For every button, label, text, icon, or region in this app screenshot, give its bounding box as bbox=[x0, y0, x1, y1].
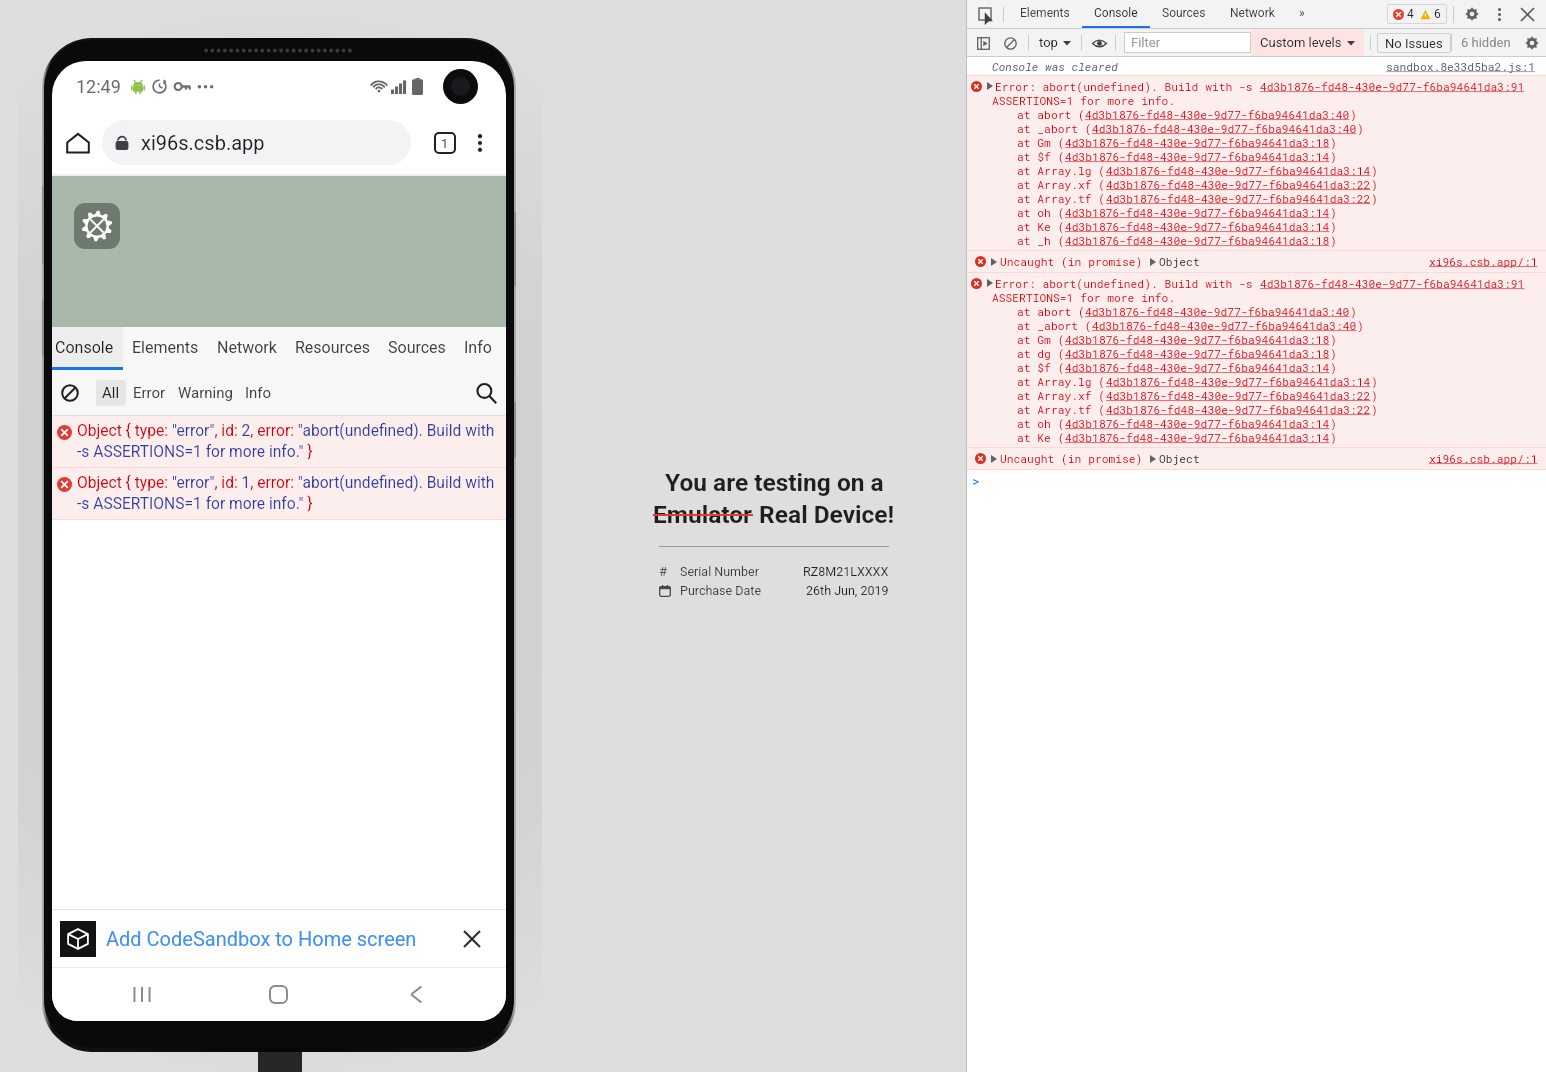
staticText: Uncaught (in promise) bbox=[1000, 451, 1143, 466]
button[interactable]: Error bbox=[127, 380, 172, 406]
button[interactable]: Filter bbox=[1124, 32, 1251, 53]
staticText: Console was cleared bbox=[992, 59, 1118, 74]
staticText: 1 bbox=[441, 136, 449, 151]
button[interactable]: Network bbox=[1218, 0, 1287, 28]
staticText: » bbox=[1299, 6, 1305, 20]
button[interactable]: Close DevTools bbox=[1517, 4, 1537, 24]
staticText: 4d3b1876-fd48-430e-9d77-f6ba94641da3:18 bbox=[1065, 233, 1330, 247]
staticText: ) bbox=[1330, 332, 1337, 346]
button[interactable]: Info bbox=[455, 327, 500, 370]
staticText: 4d3b1876-fd48-430e-9d77-f6ba94641da3:14 bbox=[1065, 430, 1330, 444]
staticText: ) bbox=[1330, 346, 1337, 360]
staticText: Info bbox=[245, 384, 272, 402]
button[interactable]: Elements bbox=[1008, 0, 1082, 28]
button[interactable]: Network bbox=[208, 327, 286, 370]
staticText: 4 bbox=[1407, 7, 1414, 21]
staticText: at Array.xf ( bbox=[1017, 388, 1106, 402]
staticText: 4d3b1876-fd48-430e-9d77-f6ba94641da3:14 bbox=[1106, 374, 1371, 388]
button[interactable]: » bbox=[1287, 0, 1317, 28]
staticText: at Array.tf ( bbox=[1017, 191, 1106, 205]
staticText: at Array.tf ( bbox=[1017, 402, 1106, 416]
staticText: at _abort ( bbox=[1017, 121, 1092, 135]
button[interactable]: Clear console bbox=[1000, 33, 1020, 53]
button[interactable]: Custom levels bbox=[1251, 29, 1364, 56]
staticText: 4d3b1876-fd48-430e-9d77-f6ba94641da3:40 bbox=[1092, 121, 1357, 135]
staticText: ) bbox=[1330, 135, 1337, 149]
staticText: at Array.xf ( bbox=[1017, 177, 1106, 191]
button[interactable]: More options bbox=[467, 130, 493, 156]
staticText: at oh ( bbox=[1017, 205, 1065, 219]
staticText: 6 hidden bbox=[1461, 35, 1511, 50]
button[interactable]: Elements bbox=[123, 327, 208, 370]
button[interactable]: Show sidebar bbox=[973, 33, 993, 53]
staticText: 4d3b1876-fd48-430e-9d77-f6ba94641da3:18 bbox=[1065, 332, 1330, 346]
staticText: 4d3b1876-fd48-430e-9d77-f6ba94641da3:40 bbox=[1085, 107, 1350, 121]
staticText: 4d3b1876-fd48-430e-9d77-f6ba94641da3:22 bbox=[1106, 402, 1371, 416]
staticText: sandbox.8e33d5ba2.js:1 bbox=[1386, 59, 1536, 74]
button[interactable]: Tabs bbox=[429, 127, 461, 159]
button[interactable]: Live expression bbox=[1089, 33, 1109, 53]
button[interactable]: Warning bbox=[172, 380, 239, 406]
button[interactable]: Console bbox=[52, 327, 123, 370]
staticText: Warning bbox=[178, 384, 233, 402]
button[interactable]: top bbox=[1036, 35, 1074, 50]
button[interactable]: Add CodeSandbox to Home screen bbox=[52, 910, 506, 967]
button[interactable]: No Issues bbox=[1377, 33, 1451, 53]
button[interactable]: Settings bbox=[1462, 4, 1482, 24]
button[interactable]: 4 bbox=[1387, 4, 1447, 24]
staticText: 4d3b1876-fd48-430e-9d77-f6ba94641da3:14 bbox=[1065, 416, 1330, 430]
button[interactable]: Search bbox=[471, 378, 501, 408]
button[interactable]: Sources bbox=[379, 327, 455, 370]
staticText: 4d3b1876-fd48-430e-9d77-f6ba94641da3:14 bbox=[1065, 360, 1330, 374]
button[interactable]: Home bbox=[210, 968, 347, 1021]
button[interactable]: Sources bbox=[1150, 0, 1218, 28]
staticText: ASSERTIONS=1 for more info. bbox=[992, 290, 1176, 304]
staticText: Console bbox=[55, 338, 114, 357]
staticText: ) bbox=[1357, 121, 1364, 135]
staticText: 4d3b1876-fd48-430e-9d77-f6ba94641da3:18 bbox=[1065, 135, 1330, 149]
button[interactable]: All bbox=[96, 380, 126, 406]
button[interactable]: Customize bbox=[1491, 6, 1507, 22]
staticText: Sources bbox=[388, 338, 446, 357]
staticText: ) bbox=[1371, 388, 1378, 402]
button[interactable]: Clear console bbox=[55, 378, 85, 408]
staticText: Network bbox=[1230, 6, 1275, 20]
staticText: at $f ( bbox=[1017, 149, 1065, 163]
button[interactable]: Inspect element bbox=[973, 2, 997, 26]
staticText: ) bbox=[1371, 191, 1378, 205]
button[interactable]: Console settings bbox=[1522, 33, 1542, 53]
staticText: ) bbox=[1330, 149, 1337, 163]
staticText: 4d3b1876-fd48-430e-9d77-f6ba94641da3:22 bbox=[1106, 191, 1371, 205]
staticText: No Issues bbox=[1385, 36, 1443, 51]
staticText: at Gm ( bbox=[1017, 135, 1065, 149]
button[interactable]: Resources bbox=[286, 327, 379, 370]
staticText: ) bbox=[1330, 219, 1337, 233]
button[interactable]: Back bbox=[347, 968, 484, 1021]
staticText: at _h ( bbox=[1017, 233, 1065, 247]
staticText: Real Device! bbox=[753, 500, 895, 529]
staticText: Object { type: "error", id: 2, error: "a… bbox=[77, 422, 506, 461]
staticText: 4d3b1876-fd48-430e-9d77-f6ba94641da3:22 bbox=[1106, 388, 1371, 402]
staticText: at Gm ( bbox=[1017, 332, 1065, 346]
staticText: ) bbox=[1330, 416, 1337, 430]
staticText: Emulator bbox=[653, 500, 753, 529]
button[interactable]: Recents bbox=[74, 968, 210, 1021]
staticText: Object { type: "error", id: 1, error: "a… bbox=[77, 474, 506, 513]
staticText: 4d3b1876-fd48-430e-9d77-f6ba94641da3:40 bbox=[1092, 318, 1357, 332]
staticText: All bbox=[102, 384, 120, 402]
staticText: Elements bbox=[1020, 6, 1070, 20]
staticText: 4d3b1876-fd48-430e-9d77-f6ba94641da3:18 bbox=[1065, 346, 1330, 360]
button[interactable]: Info bbox=[239, 380, 278, 406]
button[interactable]: Console bbox=[1082, 0, 1150, 28]
button[interactable]: Home bbox=[61, 126, 95, 160]
staticText: ) bbox=[1371, 163, 1378, 177]
staticText: > bbox=[972, 472, 980, 489]
staticText: xi96s.csb.app/:1 bbox=[1429, 254, 1538, 269]
staticText: Info bbox=[464, 338, 491, 357]
button[interactable]: xi96s.csb.app bbox=[102, 120, 411, 165]
staticText: at _abort ( bbox=[1017, 318, 1092, 332]
staticText: 4d3b1876-fd48-430e-9d77-f6ba94641da3:14 bbox=[1065, 149, 1330, 163]
staticText: at Ke ( bbox=[1017, 430, 1065, 444]
staticText: Object bbox=[1159, 254, 1200, 269]
button[interactable]: Close bbox=[458, 925, 486, 953]
